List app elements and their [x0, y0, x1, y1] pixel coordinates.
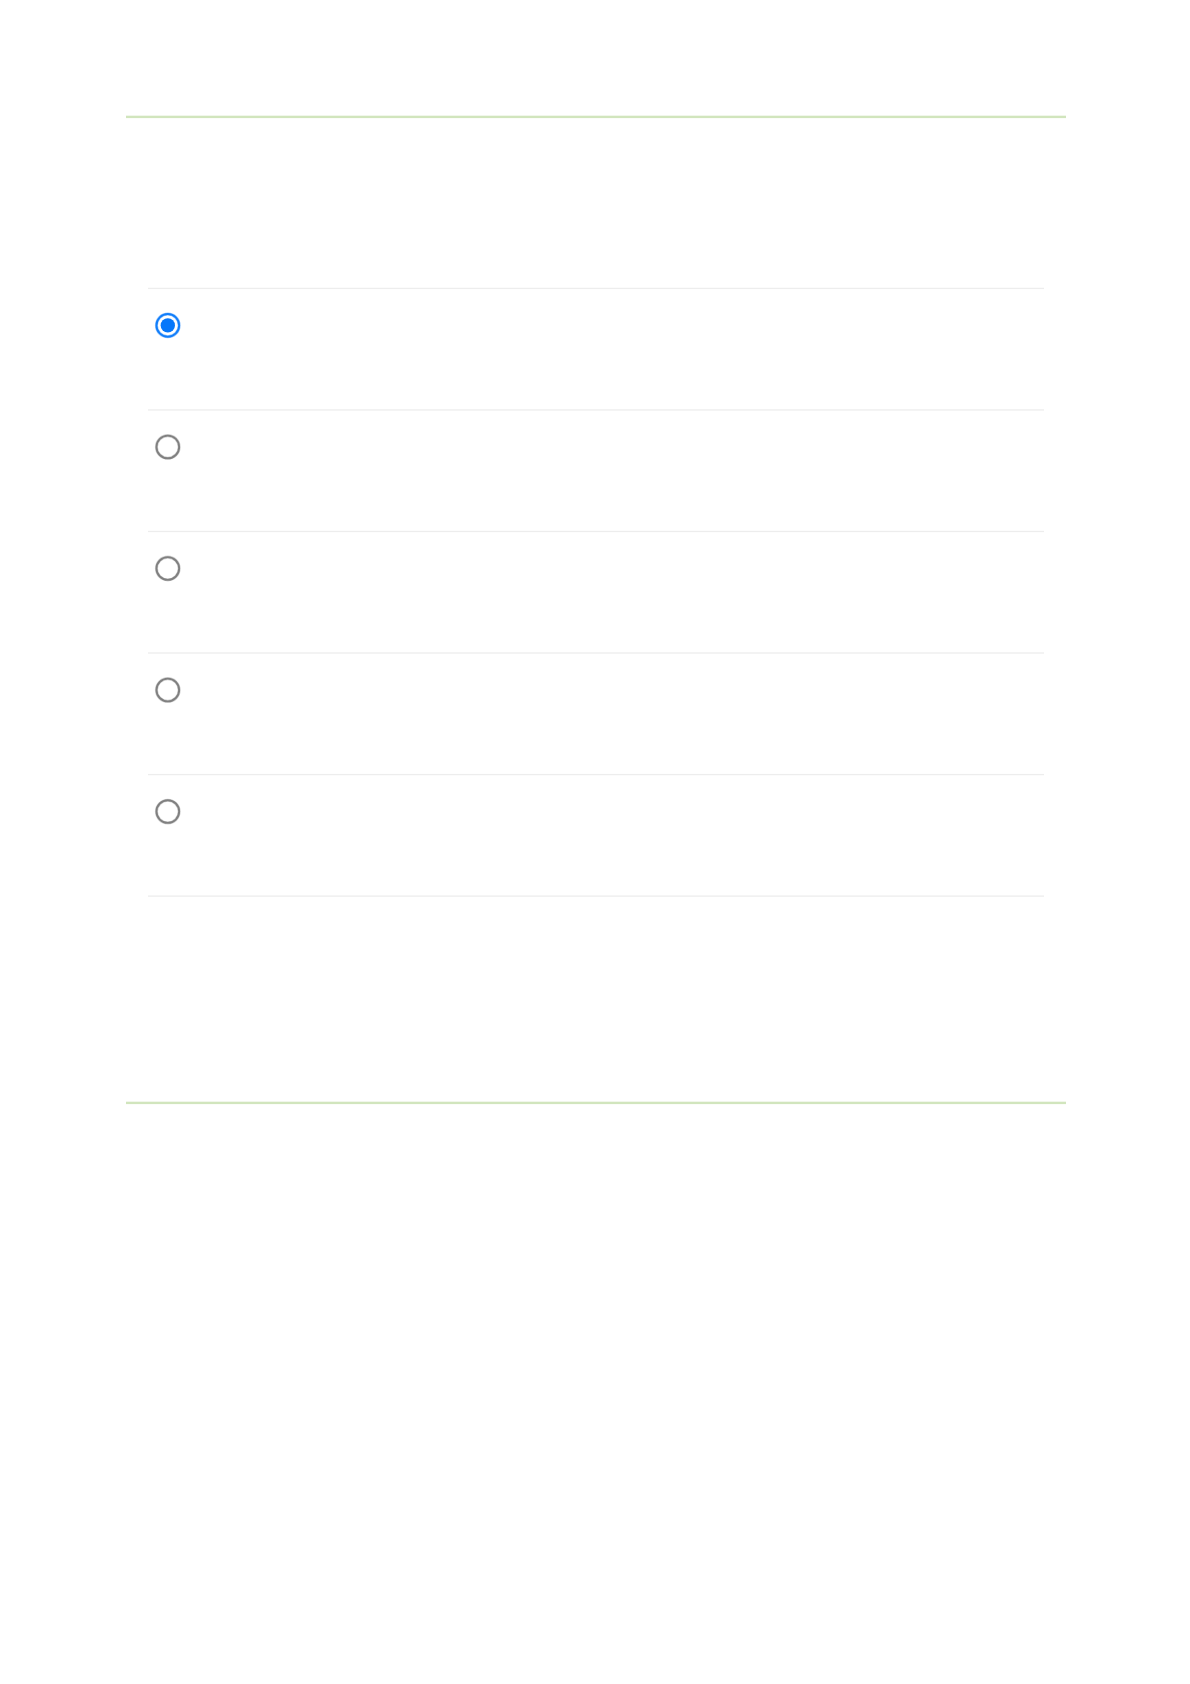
button[interactable]: Option 4: [148, 653, 1044, 775]
button[interactable]: Option 5: [148, 775, 1044, 897]
button[interactable]: Option 3: [148, 531, 1044, 653]
button[interactable]: Option 1: [148, 288, 1044, 410]
button[interactable]: Option 2: [148, 410, 1044, 532]
